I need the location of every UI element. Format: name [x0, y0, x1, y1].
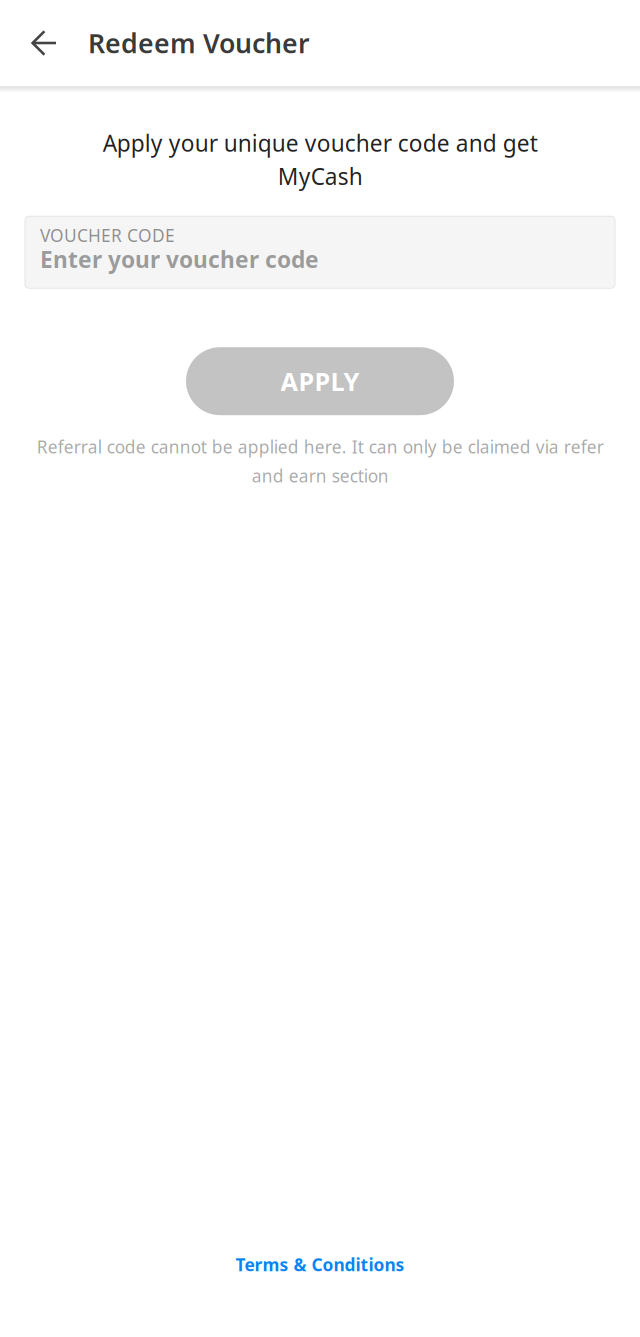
button[interactable]: Terms & Conditions [221, 1244, 418, 1285]
button[interactable]: APPLY [186, 347, 454, 415]
staticText: APPLY [280, 364, 359, 398]
staticText: Terms & Conditions [235, 1253, 404, 1276]
staticText: Enter your voucher code [40, 244, 319, 274]
staticText: VOUCHER CODE [40, 224, 175, 247]
staticText: Referral code cannot be applied here. It… [36, 435, 603, 487]
staticText: Apply your unique voucher code and get M… [102, 128, 537, 191]
button[interactable]: VOUCHER CODE [25, 216, 615, 288]
button[interactable]: Back [16, 0, 72, 86]
staticText: Redeem Voucher [88, 25, 310, 61]
